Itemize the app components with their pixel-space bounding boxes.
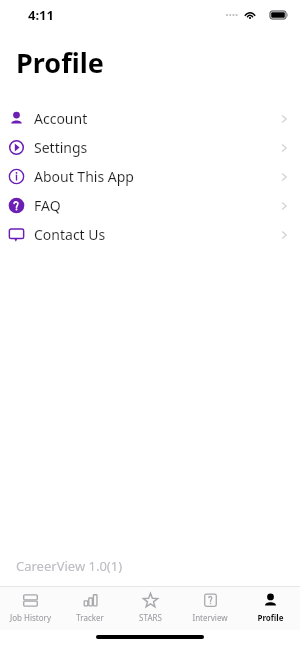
staticText: Job History <box>10 612 51 623</box>
button[interactable]: Interview <box>180 587 240 630</box>
staticText: FAQ <box>34 196 61 215</box>
staticText: Account <box>34 109 88 128</box>
staticText: 4:11 <box>28 6 54 24</box>
staticText: STARS <box>139 612 162 623</box>
button[interactable]: STARS <box>120 587 180 630</box>
staticText: Interview <box>192 612 228 623</box>
button[interactable]: Job History <box>0 587 60 630</box>
button[interactable]: Account <box>0 104 300 133</box>
button[interactable]: About This App <box>0 162 300 191</box>
button[interactable]: Contact Us <box>0 220 300 249</box>
button[interactable]: Profile <box>240 587 300 630</box>
staticText: Profile <box>257 612 284 623</box>
staticText: Profile <box>16 44 104 81</box>
staticText: CareerView 1.0(1) <box>16 557 123 575</box>
staticText: About This App <box>34 167 134 186</box>
staticText: Settings <box>34 138 88 157</box>
staticText: Tracker <box>76 612 104 623</box>
button[interactable]: Tracker <box>60 587 120 630</box>
button[interactable]: FAQ <box>0 191 300 220</box>
staticText: Contact Us <box>34 225 106 244</box>
button[interactable]: Settings <box>0 133 300 162</box>
